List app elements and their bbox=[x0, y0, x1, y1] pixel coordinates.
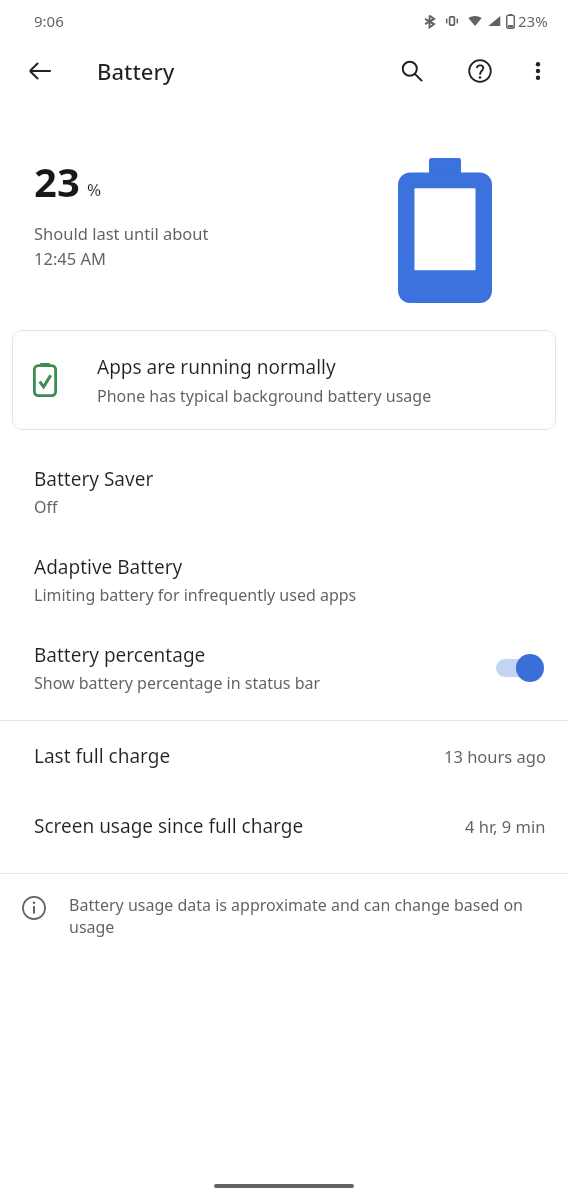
button[interactable]: Back bbox=[16, 47, 64, 95]
button[interactable]: Screen usage since full charge bbox=[0, 791, 568, 861]
staticText: 4 hr, 9 min bbox=[465, 815, 546, 837]
staticText: Battery bbox=[97, 56, 175, 86]
other: Battery percentage toggle bbox=[494, 653, 546, 683]
staticText: 23% bbox=[518, 11, 548, 31]
staticText: Phone has typical background battery usa… bbox=[97, 385, 432, 407]
button[interactable]: Battery Saver bbox=[0, 448, 568, 536]
staticText: Should last until about bbox=[34, 222, 209, 244]
staticText: 23 bbox=[34, 154, 80, 208]
staticText: Limiting battery for infrequently used a… bbox=[34, 584, 357, 606]
staticText: Battery percentage bbox=[34, 642, 206, 668]
staticText: Battery Saver bbox=[34, 466, 154, 492]
staticText: % bbox=[87, 178, 102, 201]
staticText: Show battery percentage in status bar bbox=[34, 672, 321, 694]
staticText: Screen usage since full charge bbox=[34, 813, 465, 839]
staticText: Last full charge bbox=[34, 743, 444, 769]
staticText: 13 hours ago bbox=[444, 745, 546, 767]
button[interactable]: Adaptive Battery bbox=[0, 536, 568, 624]
staticText: Battery usage data is approximate and ca… bbox=[69, 894, 540, 938]
button[interactable]: More options bbox=[514, 47, 562, 95]
button[interactable]: Search bbox=[388, 47, 436, 95]
button[interactable]: Help bbox=[456, 47, 504, 95]
staticText: 12:45 AM bbox=[34, 247, 106, 269]
staticText: 9:06 bbox=[34, 11, 64, 31]
staticText: Adaptive Battery bbox=[34, 554, 183, 580]
button[interactable]: Battery percentage bbox=[0, 624, 568, 712]
other: Information bbox=[22, 896, 46, 920]
button[interactable]: Apps are running normally bbox=[12, 330, 556, 430]
staticText: Apps are running normally bbox=[97, 354, 336, 380]
button[interactable]: Last full charge bbox=[0, 721, 568, 791]
staticText: Off bbox=[34, 496, 58, 518]
